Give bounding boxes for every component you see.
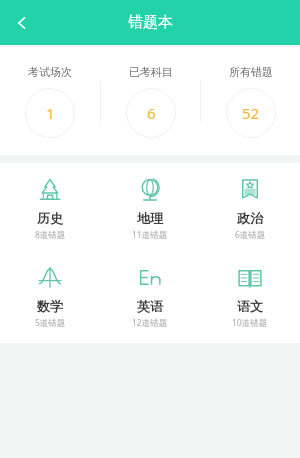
button[interactable]: 所有错题 <box>201 59 300 144</box>
staticText: 1 <box>46 103 55 123</box>
button[interactable]: 语文 <box>200 261 300 333</box>
staticText: 8道错题 <box>35 229 66 241</box>
button[interactable]: 政治 <box>200 173 300 245</box>
staticText: 5道错题 <box>35 317 66 329</box>
button[interactable]: 已考科目 <box>101 59 200 144</box>
button[interactable]: Back <box>0 1 44 45</box>
staticText: 英语 <box>137 298 163 314</box>
staticText: 11道错题 <box>132 229 168 241</box>
staticText: 10道错题 <box>232 317 268 329</box>
button[interactable]: 数学 <box>0 261 100 333</box>
staticText: 已考科目 <box>129 65 173 79</box>
staticText: 所有错题 <box>229 65 273 79</box>
staticText: 考试场次 <box>28 65 72 79</box>
staticText: 历史 <box>37 210 63 226</box>
staticText: 6道错题 <box>235 229 266 241</box>
staticText: 52 <box>242 103 260 123</box>
button[interactable]: 历史 <box>0 173 100 245</box>
staticText: 政治 <box>237 210 263 226</box>
staticText: 地理 <box>137 210 163 226</box>
staticText: 语文 <box>237 298 263 314</box>
staticText: 12道错题 <box>132 317 168 329</box>
button[interactable]: 英语 <box>100 261 200 333</box>
button[interactable]: 地理 <box>100 173 200 245</box>
button[interactable]: 考试场次 <box>0 59 100 144</box>
staticText: 数学 <box>37 298 63 314</box>
staticText: 6 <box>147 103 156 123</box>
staticText: 错题本 <box>128 13 173 32</box>
